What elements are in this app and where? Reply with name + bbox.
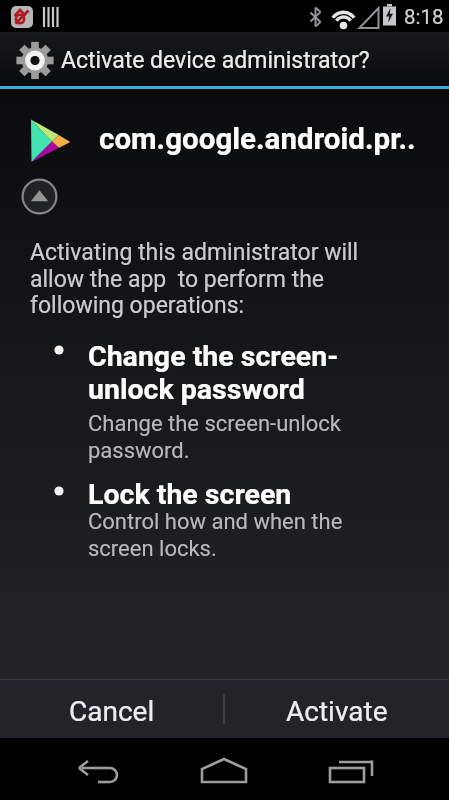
button[interactable] (72, 753, 126, 789)
staticText: Control how and when the screen locks. (88, 509, 380, 561)
staticText: Lock the screen (88, 478, 368, 511)
button[interactable]: Activate (225, 680, 449, 738)
staticText: Activate device administrator? (61, 47, 370, 74)
staticText: Activating this administrator will allow… (30, 239, 400, 319)
staticText: Activate (286, 695, 388, 728)
staticText: Change the screen-unlock password. (88, 411, 380, 463)
staticText: Change the screen-unlock password (88, 340, 368, 406)
button[interactable] (197, 753, 251, 789)
button[interactable]: Cancel (0, 680, 223, 738)
button[interactable] (21, 178, 58, 215)
staticText: 8:18 (404, 5, 444, 29)
staticText: com.google.android.pr.. (99, 122, 416, 157)
button[interactable] (322, 753, 376, 789)
staticText: Cancel (69, 695, 155, 728)
